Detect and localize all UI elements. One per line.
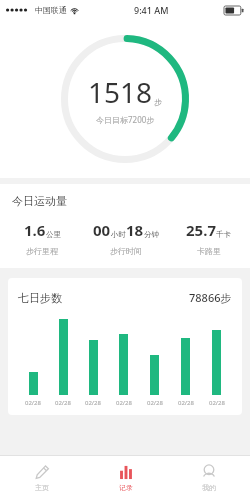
staticText: 步行里程 bbox=[26, 246, 58, 256]
staticText: 00 bbox=[93, 220, 111, 240]
staticText: 小时 bbox=[111, 230, 126, 239]
staticText: 中国联通 bbox=[35, 5, 67, 15]
staticText: 9:41 AM bbox=[134, 4, 169, 16]
button[interactable]: 七日步数 bbox=[8, 278, 242, 415]
staticText: 主页 bbox=[35, 483, 49, 492]
staticText: 今日运动量 bbox=[12, 194, 67, 208]
staticText: 02/28 bbox=[209, 399, 225, 407]
staticText: 78866步 bbox=[189, 290, 232, 305]
staticText: 千卡 bbox=[216, 230, 231, 239]
staticText: 25.7 bbox=[186, 220, 216, 240]
staticText: 七日步数 bbox=[18, 291, 62, 305]
staticText: 记录 bbox=[119, 483, 133, 492]
staticText: 分钟 bbox=[144, 230, 159, 239]
staticText: 02/28 bbox=[55, 399, 71, 407]
staticText: 公里 bbox=[46, 230, 61, 239]
button[interactable]: 我的 bbox=[167, 456, 250, 500]
staticText: 02/28 bbox=[85, 399, 101, 407]
staticText: 1.6 bbox=[24, 220, 46, 240]
staticText: 02/28 bbox=[178, 399, 194, 407]
button[interactable]: 记录 bbox=[84, 456, 167, 500]
button[interactable]: 主页 bbox=[0, 456, 84, 500]
staticText: 我的 bbox=[202, 483, 216, 492]
staticText: 卡路里 bbox=[197, 246, 221, 256]
staticText: 步 bbox=[154, 97, 162, 107]
staticText: 步行时间 bbox=[110, 246, 142, 256]
staticText: 今日目标7200步 bbox=[96, 114, 155, 125]
staticText: 1518 bbox=[88, 73, 153, 111]
staticText: 02/28 bbox=[116, 399, 132, 407]
staticText: 02/28 bbox=[25, 399, 41, 407]
staticText: 18 bbox=[126, 220, 144, 240]
staticText: 02/28 bbox=[147, 399, 163, 407]
